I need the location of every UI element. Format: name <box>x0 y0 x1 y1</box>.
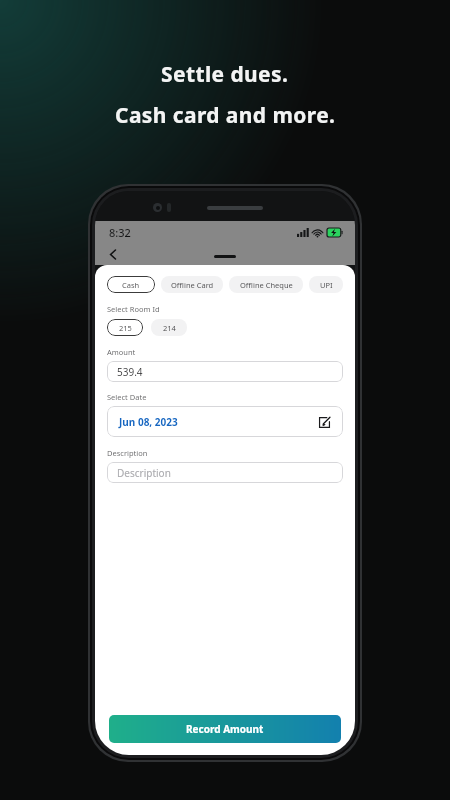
staticText: 539.4 <box>117 365 143 379</box>
staticText: 215 <box>119 323 132 333</box>
button[interactable]: 215 <box>107 319 143 336</box>
staticText: Cash card and more. <box>115 101 336 130</box>
staticText: Settle dues. <box>161 60 289 89</box>
button[interactable]: Jun 08, 2023 <box>107 406 343 437</box>
button[interactable]: Edit date <box>316 414 332 430</box>
button[interactable]: Offline Card <box>161 276 223 293</box>
staticText: Offline Card <box>171 280 214 290</box>
button[interactable]: Cash <box>107 276 155 293</box>
button[interactable]: Back <box>103 244 123 264</box>
button[interactable]: Offline Cheque <box>229 276 303 293</box>
staticText: 8:32 <box>109 225 131 240</box>
staticText: UPI <box>320 280 333 290</box>
staticText: Description <box>107 448 148 458</box>
button[interactable]: Description <box>107 462 343 483</box>
staticText: Select Date <box>107 392 147 402</box>
staticText: Jun 08, 2023 <box>119 415 178 429</box>
staticText: Cash <box>122 280 140 290</box>
staticText: Select Room Id <box>107 304 160 314</box>
button[interactable]: 214 <box>151 319 187 336</box>
staticText: Description <box>117 466 171 480</box>
staticText: 214 <box>163 323 176 333</box>
button[interactable]: UPI <box>309 276 343 293</box>
staticText: Offline Cheque <box>240 280 293 290</box>
staticText: Amount <box>107 347 136 357</box>
button[interactable]: 539.4 <box>107 361 343 382</box>
button[interactable]: Record Amount <box>109 715 341 743</box>
staticText: Record Amount <box>186 722 264 736</box>
